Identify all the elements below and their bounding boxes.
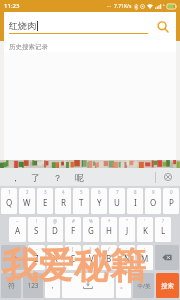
button[interactable]: 6 xyxy=(91,188,107,214)
button[interactable]: 7 xyxy=(109,188,125,214)
button[interactable]: ' xyxy=(137,217,153,242)
staticText: 1 xyxy=(8,189,11,195)
staticText: 8 xyxy=(134,189,137,195)
staticText: G xyxy=(88,225,94,236)
staticText: P xyxy=(169,197,174,208)
button[interactable]: ？ xyxy=(46,168,68,186)
button[interactable]: 0 xyxy=(163,188,179,214)
button[interactable]: 符 xyxy=(1,273,21,298)
button[interactable]: " xyxy=(119,217,135,242)
button[interactable]: 2 xyxy=(19,188,35,214)
staticText: A xyxy=(15,225,21,236)
staticText: 呢 xyxy=(75,172,84,183)
staticText: ) xyxy=(90,246,92,252)
button[interactable] xyxy=(62,273,114,298)
button[interactable]: : xyxy=(119,245,135,270)
staticText: _ xyxy=(54,246,56,252)
button[interactable]: ， xyxy=(6,168,24,186)
staticText: 7.71K/s xyxy=(114,3,132,10)
staticText: K xyxy=(143,225,148,236)
staticText: U xyxy=(114,197,120,208)
staticText: / xyxy=(108,246,110,252)
staticText: # xyxy=(72,218,75,224)
button[interactable]: # xyxy=(65,217,81,242)
staticText: D xyxy=(52,225,58,236)
staticText: C xyxy=(70,253,76,264)
button[interactable]: ~ xyxy=(9,217,26,242)
button[interactable]: - xyxy=(28,245,45,270)
button[interactable] xyxy=(1,245,26,270)
button[interactable]: 1 xyxy=(1,188,17,214)
staticText: 5 xyxy=(80,189,83,195)
staticText: 9 xyxy=(152,189,155,195)
staticText: F xyxy=(71,225,76,236)
staticText: I xyxy=(134,197,137,208)
staticText: E xyxy=(43,197,48,208)
staticText: 6 xyxy=(98,189,101,195)
button[interactable]: % xyxy=(83,217,99,242)
staticText: W xyxy=(23,197,31,208)
button[interactable]: Close keyboard xyxy=(156,168,180,186)
staticText: : xyxy=(126,246,128,252)
staticText: L xyxy=(161,225,166,236)
button[interactable]: 中/英 xyxy=(133,273,154,298)
staticText: H xyxy=(106,225,112,236)
staticText: 2 xyxy=(26,189,29,195)
button[interactable]: 。 xyxy=(116,273,131,298)
staticText: ' xyxy=(144,218,146,224)
staticText: 红烧肉 xyxy=(9,20,36,31)
button[interactable]: 红烧肉 xyxy=(9,20,148,34)
staticText: ， xyxy=(11,172,20,183)
staticText: 4 xyxy=(62,189,65,195)
staticText: O xyxy=(150,197,157,208)
button[interactable]: ， xyxy=(45,273,60,298)
staticText: J xyxy=(126,225,129,236)
staticText: 搜索 xyxy=(161,282,174,290)
button[interactable]: ? xyxy=(155,217,171,242)
button[interactable]: 了 xyxy=(24,168,46,186)
button[interactable]: 4 xyxy=(55,188,71,214)
staticText: Q xyxy=(6,197,13,208)
staticText: Z xyxy=(34,253,39,264)
button[interactable] xyxy=(155,245,179,270)
staticText: 历史搜索记录 xyxy=(9,43,48,51)
staticText: " xyxy=(126,218,128,224)
button[interactable]: 5 xyxy=(73,188,89,214)
staticText: T xyxy=(79,197,84,208)
button[interactable]: 搜索 xyxy=(156,273,179,298)
staticText: 123 xyxy=(27,281,39,290)
staticText: 了 xyxy=(31,172,40,183)
button[interactable]: 8 xyxy=(127,188,143,214)
staticText: ··· xyxy=(107,3,112,10)
staticText: 符 xyxy=(8,281,15,290)
staticText: R xyxy=(61,197,66,208)
staticText: 。 xyxy=(120,281,127,290)
button[interactable]: ! xyxy=(28,217,45,242)
button[interactable]: / xyxy=(101,245,117,270)
button[interactable]: ; xyxy=(137,245,153,270)
button[interactable]: _ xyxy=(47,245,63,270)
staticText: ~ xyxy=(16,218,19,224)
button[interactable]: 呢 xyxy=(68,168,90,186)
staticText: B xyxy=(106,253,112,264)
button[interactable]: 9 xyxy=(145,188,161,214)
button[interactable]: ( xyxy=(65,245,81,270)
staticText: ( xyxy=(72,246,74,252)
button[interactable]: 123 xyxy=(23,273,43,298)
staticText: % xyxy=(89,218,93,224)
staticText: 我爱秘籍 xyxy=(2,243,146,288)
staticText: 0 xyxy=(170,189,173,195)
staticText: M xyxy=(141,253,149,264)
staticText: - xyxy=(36,246,38,252)
button[interactable]: @ xyxy=(47,217,63,242)
button[interactable]: 3 xyxy=(37,188,53,214)
button[interactable]: Search xyxy=(154,18,172,36)
staticText: ; xyxy=(144,246,146,252)
button[interactable]: ) xyxy=(83,245,99,270)
staticText: ? xyxy=(162,218,164,224)
staticText: 3 xyxy=(44,189,47,195)
staticText: N xyxy=(124,253,131,264)
staticText: 7 xyxy=(116,189,119,195)
button[interactable]: * xyxy=(101,217,117,242)
staticText: ⁺ xyxy=(163,3,165,10)
